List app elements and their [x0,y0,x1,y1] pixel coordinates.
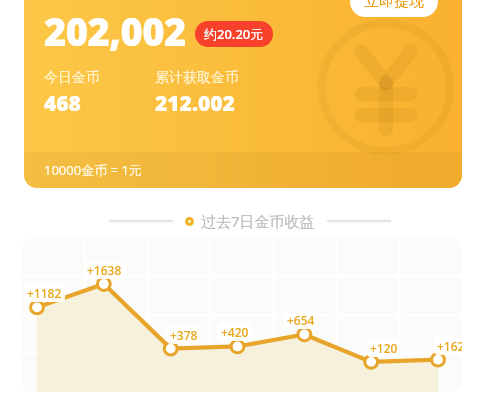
staticText: +1638 [87,262,122,278]
staticText: +378 [170,327,198,343]
other: 过去7日金币收益折线图 [22,238,462,392]
staticText: +120 [370,340,398,356]
staticText: 约20.20元 [204,25,264,43]
staticText: 过去7日金币收益 [201,211,315,231]
staticText: +1182 [27,285,62,301]
staticText: 累计获取金币 [155,69,239,87]
staticText: +420 [221,324,249,340]
staticText: 今日金币 [44,69,100,87]
button[interactable]: 约20.20元 [195,21,273,47]
staticText: +162 [437,338,462,354]
staticText: 212.002 [155,89,235,118]
staticText: +654 [287,312,315,328]
staticText: 立即提现 [364,0,424,11]
staticText: 468 [44,89,81,118]
staticText: 10000金币 = 1元 [44,161,142,179]
button[interactable]: 立即提现 [350,0,438,17]
staticText: 202,002 [44,5,186,57]
